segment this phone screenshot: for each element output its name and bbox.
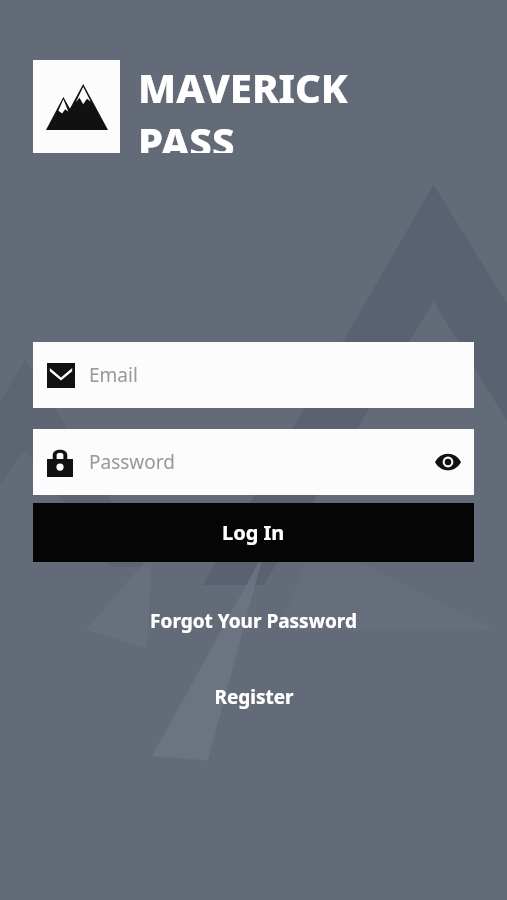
- button[interactable]: Register: [194, 678, 314, 716]
- button[interactable]: Password: [33, 429, 474, 495]
- button[interactable]: Show password: [426, 440, 470, 484]
- staticText: Password: [89, 449, 175, 475]
- staticText: Email: [89, 362, 138, 388]
- staticText: Log In: [222, 519, 285, 546]
- button[interactable]: Forgot Your Password: [130, 602, 377, 640]
- button[interactable]: Email: [33, 342, 474, 408]
- staticText: Register: [214, 684, 294, 710]
- staticText: PASS: [138, 114, 235, 153]
- staticText: MAVERICK: [138, 60, 348, 114]
- staticText: Forgot Your Password: [150, 608, 357, 634]
- button[interactable]: Log In: [33, 503, 474, 562]
